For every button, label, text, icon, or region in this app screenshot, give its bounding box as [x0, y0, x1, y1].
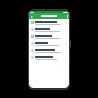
button[interactable]: Back — [29, 13, 69, 19]
button[interactable]: Open Item two — [29, 26, 69, 33]
button[interactable]: Open Item one — [29, 19, 69, 26]
button[interactable]: Open Item five — [29, 47, 69, 54]
button[interactable]: Open Item four — [29, 40, 69, 47]
button[interactable]: Open Item six — [64, 56, 67, 59]
button[interactable]: Open Item three — [64, 35, 67, 38]
button[interactable]: Back — [30, 15, 33, 18]
button[interactable]: Open Item four — [64, 42, 67, 45]
button[interactable]: Open Item one — [64, 21, 67, 24]
button[interactable]: Open Item five — [64, 49, 67, 52]
button[interactable]: Open Item two — [64, 28, 67, 31]
button[interactable]: Open Item three — [29, 33, 69, 40]
button[interactable]: Open Item six — [29, 54, 69, 61]
other: Power button — [70, 40, 71, 47]
